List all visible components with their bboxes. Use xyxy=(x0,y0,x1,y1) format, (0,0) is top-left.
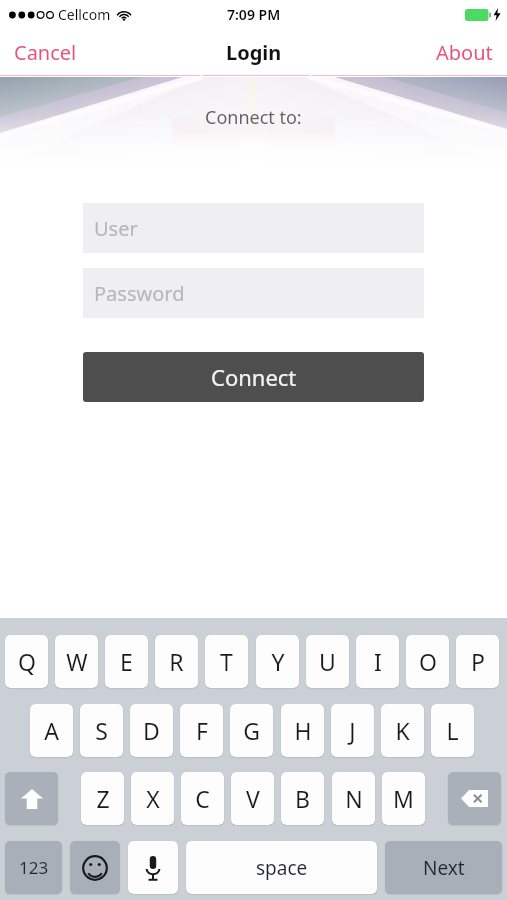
button[interactable]: User xyxy=(83,203,424,253)
staticText: Y xyxy=(271,646,285,677)
button[interactable]: Connect xyxy=(83,352,424,402)
button[interactable]: N xyxy=(332,772,375,825)
staticText: K xyxy=(395,715,410,746)
staticText: M xyxy=(393,783,414,814)
staticText: 123 xyxy=(19,856,49,879)
staticText: U xyxy=(319,646,336,677)
staticText: Connect xyxy=(211,362,297,392)
button[interactable]: X xyxy=(131,772,174,825)
button[interactable]: M xyxy=(382,772,425,825)
staticText: A xyxy=(44,715,59,746)
button[interactable]: O xyxy=(406,635,449,688)
staticText: D xyxy=(143,715,160,746)
button[interactable]: U xyxy=(306,635,349,688)
staticText: I xyxy=(374,646,382,677)
button[interactable]: space xyxy=(186,841,377,894)
staticText: S xyxy=(95,715,108,746)
staticText: User xyxy=(94,215,138,242)
staticText: R xyxy=(169,646,184,677)
staticText: F xyxy=(196,715,208,746)
staticText: J xyxy=(349,715,356,746)
button[interactable]: V xyxy=(231,772,274,825)
staticText: N xyxy=(345,783,363,814)
button[interactable]: Cancel xyxy=(0,31,91,74)
button[interactable]: Emoji xyxy=(70,841,120,894)
staticText: O xyxy=(419,646,437,677)
staticText: 7:09 PM xyxy=(227,5,281,24)
button[interactable]: Password xyxy=(83,268,424,318)
staticText: About xyxy=(436,39,493,66)
button[interactable]: D xyxy=(130,704,173,757)
staticText: B xyxy=(295,783,310,814)
button[interactable]: W xyxy=(55,635,98,688)
button[interactable]: A xyxy=(30,704,73,757)
staticText: Next xyxy=(423,855,465,881)
button[interactable]: F xyxy=(180,704,223,757)
staticText: C xyxy=(195,783,210,814)
button[interactable]: C xyxy=(181,772,224,825)
button[interactable]: T xyxy=(205,635,248,688)
button[interactable]: I xyxy=(356,635,399,688)
staticText: T xyxy=(220,646,233,677)
button[interactable]: About xyxy=(422,31,507,74)
staticText: Z xyxy=(96,783,110,814)
staticText: space xyxy=(256,855,308,881)
staticText: Login xyxy=(226,39,282,66)
button[interactable]: S xyxy=(80,704,123,757)
staticText: E xyxy=(120,646,133,677)
button[interactable]: E xyxy=(105,635,148,688)
staticText: H xyxy=(294,715,312,746)
staticText: G xyxy=(243,715,260,746)
button[interactable]: K xyxy=(381,704,424,757)
button[interactable]: L xyxy=(431,704,474,757)
staticText: X xyxy=(146,783,160,814)
button[interactable]: Next xyxy=(385,841,502,894)
staticText: L xyxy=(446,715,459,746)
staticText: Password xyxy=(94,280,185,307)
button[interactable]: Z xyxy=(81,772,124,825)
staticText: W xyxy=(66,646,88,677)
button[interactable]: Backspace xyxy=(448,772,501,825)
staticText: Cancel xyxy=(14,39,77,66)
button[interactable]: R xyxy=(155,635,198,688)
button[interactable]: G xyxy=(230,704,273,757)
button[interactable]: Y xyxy=(256,635,299,688)
button[interactable]: 123 xyxy=(5,841,62,894)
staticText: P xyxy=(471,646,485,677)
staticText: Q xyxy=(18,646,36,677)
staticText: Cellcom xyxy=(58,5,111,24)
button[interactable]: Dictation xyxy=(128,841,178,894)
button[interactable]: J xyxy=(331,704,374,757)
button[interactable]: Shift xyxy=(5,772,58,825)
staticText: V xyxy=(246,783,260,814)
button[interactable]: Q xyxy=(5,635,48,688)
staticText: Connect to: xyxy=(205,105,302,130)
button[interactable]: B xyxy=(281,772,324,825)
button[interactable]: P xyxy=(456,635,499,688)
button[interactable]: H xyxy=(281,704,324,757)
